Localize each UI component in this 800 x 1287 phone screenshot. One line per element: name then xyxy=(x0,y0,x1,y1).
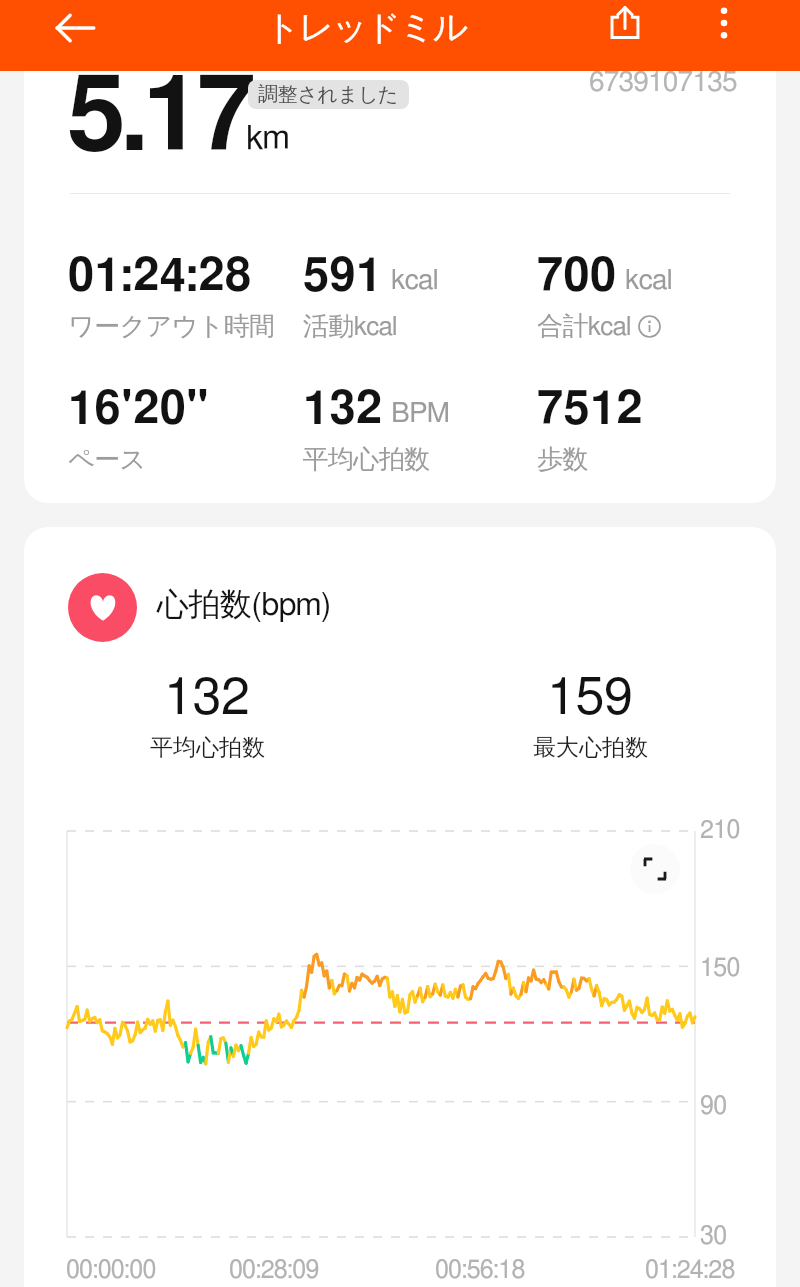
staticText: 01:24:28 xyxy=(68,253,252,300)
staticText: 平均心拍数 xyxy=(303,443,430,476)
staticText: 活動kcal xyxy=(303,310,397,343)
staticText: 最大心拍数 xyxy=(533,733,648,762)
staticText: 00:56:18 xyxy=(435,1258,525,1283)
staticText: 平均心拍数 xyxy=(150,733,265,762)
staticText: 5.17 xyxy=(67,65,252,171)
staticText: 心拍数(bpm) xyxy=(157,584,331,624)
staticText: 00:00:00 xyxy=(66,1258,156,1283)
staticText: 合計kcal xyxy=(537,310,631,343)
staticText: 90 xyxy=(700,1094,727,1119)
staticText: kcal xyxy=(391,267,439,295)
staticText: 210 xyxy=(700,818,740,843)
staticText: 歩数 xyxy=(537,443,588,476)
staticText: 591 xyxy=(303,253,383,300)
staticText: 30 xyxy=(700,1224,727,1249)
staticText: 159 xyxy=(547,672,633,724)
staticText: 00:28:09 xyxy=(229,1258,319,1283)
staticText: 7512 xyxy=(537,386,644,433)
staticText: 132 xyxy=(303,386,383,433)
staticText: 調整されました xyxy=(258,82,399,107)
button[interactable]: Back xyxy=(47,0,103,56)
button[interactable]: Share xyxy=(597,0,653,50)
staticText: 01:24:28 xyxy=(645,1258,735,1283)
staticText: BPM xyxy=(391,400,450,428)
staticText: ペース xyxy=(68,443,146,476)
staticText: 150 xyxy=(700,956,740,981)
staticText: 16'20" xyxy=(68,386,209,433)
button[interactable]: Fullscreen xyxy=(630,844,680,894)
staticText: トレッドミル xyxy=(265,5,467,49)
staticText: 6739107135 xyxy=(589,69,737,97)
staticText: kcal xyxy=(625,267,673,295)
button[interactable]: More options xyxy=(696,0,752,51)
staticText: 700 xyxy=(537,253,617,300)
staticText: 132 xyxy=(164,672,250,724)
staticText: km xyxy=(246,122,289,156)
staticText: ワークアウト時間 xyxy=(68,310,275,343)
